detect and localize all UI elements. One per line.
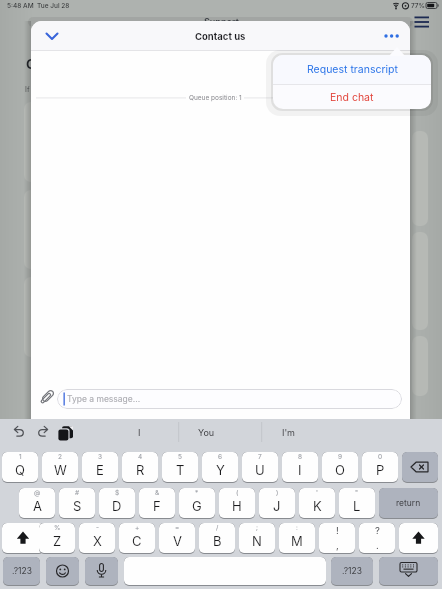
button[interactable]: D [99,488,135,519]
button[interactable]: M [279,523,315,554]
button[interactable] [41,25,63,47]
staticText: N [252,533,262,549]
staticText: Q [15,462,25,478]
button[interactable]: End chat [273,85,431,109]
staticText: # [75,489,80,497]
button[interactable]: K [299,488,335,519]
button[interactable]: Q [2,452,38,483]
staticText: W [54,462,67,478]
button[interactable] [2,523,44,554]
staticText: Request transcript [307,63,398,76]
staticText: K [313,498,322,514]
staticText: " [355,489,359,497]
staticText: ? [375,525,380,536]
staticText: End chat [330,91,374,104]
staticText: 5 [178,453,182,461]
button[interactable]: L [339,488,375,519]
staticText: Support [204,16,239,27]
button[interactable]: P [362,452,398,483]
staticText: 1 [19,453,22,461]
staticText: 8 [298,453,303,461]
staticText: % [54,524,61,532]
button[interactable] [410,12,434,32]
button[interactable]: Y [202,452,238,483]
staticText: = [175,524,180,532]
staticText: D [112,498,122,514]
button[interactable]: F [139,488,175,519]
button[interactable]: ? [359,523,395,554]
staticText: + [135,524,140,532]
staticText: return [396,498,421,508]
staticText: * [195,489,199,497]
button[interactable]: Request transcript [273,55,431,84]
staticText: 7 [258,453,262,461]
button[interactable] [402,452,438,483]
button[interactable] [381,26,403,46]
button[interactable]: S [59,488,95,519]
button[interactable]: .?123 [331,557,373,586]
button[interactable]: E [82,452,118,483]
button[interactable]: A [19,488,55,519]
button[interactable]: .?123 [3,557,40,586]
button[interactable]: Type a message... [57,389,402,409]
staticText: .?123 [342,566,362,576]
button[interactable]: R [122,452,158,483]
staticText: P [376,462,385,478]
staticText: 3 [98,453,103,461]
staticText: - [96,524,99,532]
staticText: Queue position: 1 [189,94,242,102]
staticText: 0 [378,453,383,461]
button[interactable]: Z [39,523,75,554]
staticText: R [136,462,145,478]
button[interactable]: V [159,523,195,554]
button[interactable] [46,557,79,586]
button[interactable]: G [179,488,215,519]
staticText: J [273,498,281,514]
button[interactable]: B [199,523,235,554]
staticText: ; [256,524,258,532]
staticText: Y [216,462,225,478]
staticText: 6 [218,453,223,461]
button[interactable]: U [242,452,278,483]
staticText: ( [236,489,239,497]
button[interactable]: H [219,488,255,519]
staticText: ! [336,525,339,536]
staticText: 5:48 AM Tue Jul 28 [7,2,70,10]
staticText: X [93,533,102,549]
staticText: C [26,56,36,72]
button[interactable]: I'm [264,421,312,443]
button[interactable]: J [259,488,295,519]
staticText: Type a message... [67,394,141,404]
staticText: H [232,498,242,514]
button[interactable]: ! [319,523,355,554]
staticText: ) [276,489,279,497]
button[interactable]: I [282,452,318,483]
staticText: & [155,489,160,497]
staticText: You [198,427,215,438]
button[interactable]: return [379,488,438,519]
button[interactable]: X [79,523,115,554]
button[interactable]: I [100,421,178,443]
button[interactable]: T [162,452,198,483]
button[interactable]: You [180,421,232,443]
staticText: V [173,533,182,549]
staticText: M [291,533,303,549]
button[interactable]: W [42,452,78,483]
staticText: @ [34,489,41,497]
staticText: . [376,540,379,551]
staticText: I [138,427,141,438]
button[interactable]: O [322,452,358,483]
button[interactable]: N [239,523,275,554]
button[interactable] [124,557,326,586]
staticText: Contact us [195,31,246,42]
staticText: E [96,462,104,478]
button[interactable] [399,523,438,554]
button[interactable]: C [119,523,155,554]
staticText: : [296,524,298,532]
button[interactable] [39,385,57,407]
staticText: L [353,498,361,514]
staticText: .?123 [12,566,32,576]
button[interactable] [85,557,118,586]
button[interactable] [379,557,438,586]
staticText: G [192,498,202,514]
